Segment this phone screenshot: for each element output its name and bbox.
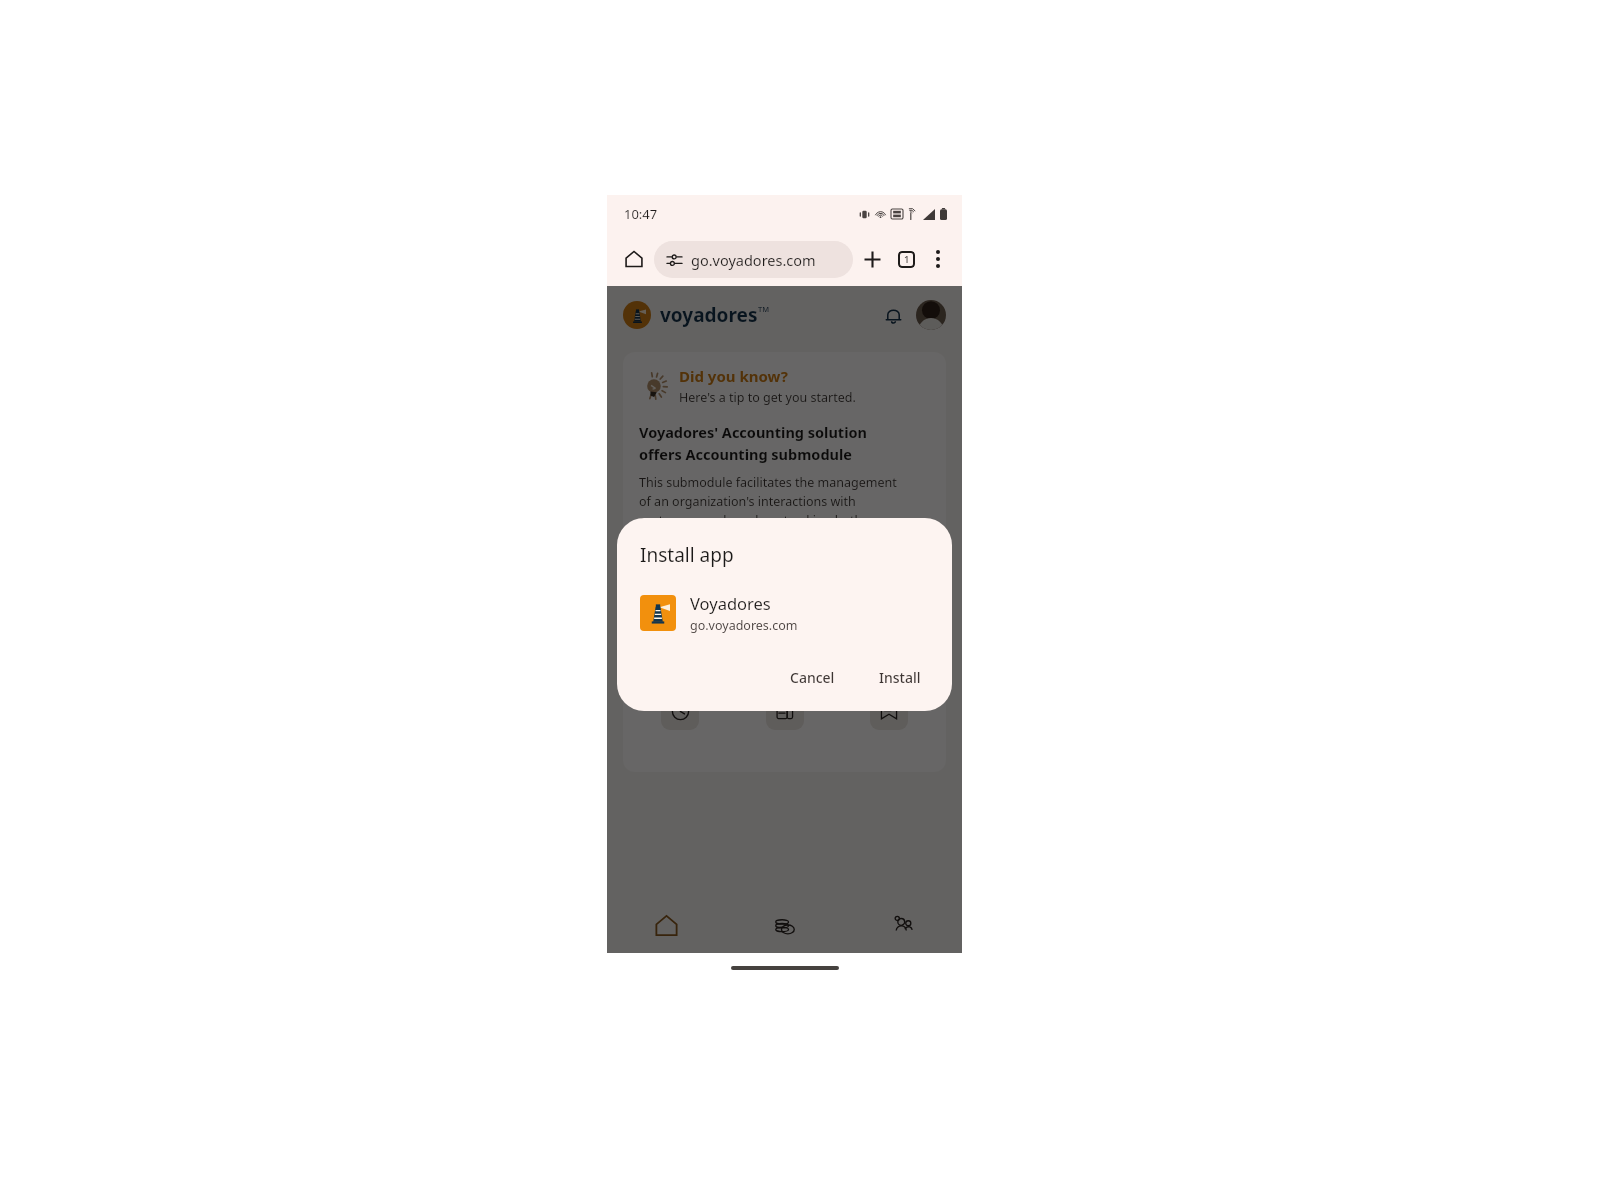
button[interactable]: Documents xyxy=(766,692,804,730)
staticText: Install app xyxy=(640,542,734,568)
staticText: Cancel xyxy=(790,668,835,687)
staticText: go.voyadores.com xyxy=(690,617,798,634)
button[interactable]: Messages xyxy=(870,692,908,730)
button[interactable]: New tab xyxy=(855,242,889,276)
button[interactable]: Cancel xyxy=(778,660,847,695)
button[interactable]: Install xyxy=(867,660,933,695)
button[interactable]: Notifications xyxy=(876,298,910,332)
staticText: Did you know? xyxy=(679,366,788,386)
button[interactable]: Did you know? xyxy=(623,352,946,616)
button[interactable]: go.voyadores.com xyxy=(654,241,853,278)
staticText: Here's a tip to get you started. xyxy=(679,389,856,406)
button[interactable]: Home xyxy=(607,897,726,953)
staticText: TM xyxy=(758,304,770,314)
button[interactable]: Home xyxy=(616,241,652,277)
staticText: 1 xyxy=(904,253,910,266)
button[interactable]: Recent xyxy=(661,692,699,730)
staticText: go.voyadores.com xyxy=(691,250,816,270)
button[interactable]: Quick Links xyxy=(623,628,946,772)
staticText: 10:47 xyxy=(624,205,658,223)
staticText: This submodule facilitates the managemen… xyxy=(639,474,897,548)
staticText: Voyadores' Accounting solution offers Ac… xyxy=(639,422,867,464)
button[interactable]: Finance xyxy=(726,897,844,953)
button[interactable]: Tabs, 1 open xyxy=(889,242,923,276)
button[interactable]: More options xyxy=(923,244,953,274)
button[interactable]: People xyxy=(844,897,962,953)
button[interactable]: Profile xyxy=(916,300,946,330)
staticText: Voyadores xyxy=(690,592,771,614)
staticText: voyadores xyxy=(660,302,758,328)
staticText: Install xyxy=(879,668,921,687)
